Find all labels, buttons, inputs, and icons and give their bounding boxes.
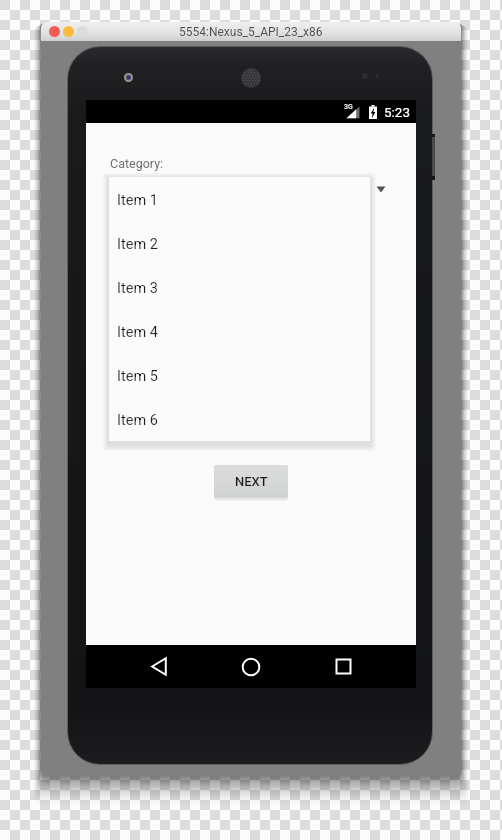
button[interactable]: NEXT [214,465,288,498]
staticText: NEXT [235,474,268,489]
button[interactable]: Back [113,645,205,688]
button[interactable]: Recents [297,645,389,688]
staticText: 5554:Nexus_5_API_23_x86 [179,25,323,39]
button[interactable]: Home [205,645,297,688]
staticText: Item 6 [117,412,158,429]
button[interactable]: Item 4 [109,310,370,354]
staticText: Item 2 [117,236,158,253]
staticText: Category: [110,156,164,171]
button[interactable]: Item 6 [109,398,370,442]
staticText: Item 5 [117,368,158,385]
staticText: 5:23 [384,104,411,120]
button[interactable]: Item 1 [109,178,370,222]
staticText: Item 4 [117,324,158,341]
staticText: Item 3 [117,280,158,297]
button[interactable]: Item 3 [109,266,370,310]
button[interactable]: Item 5 [109,354,370,398]
button[interactable]: Item 2 [109,222,370,266]
staticText: 3G [344,103,353,111]
staticText: Item 1 [117,192,158,209]
